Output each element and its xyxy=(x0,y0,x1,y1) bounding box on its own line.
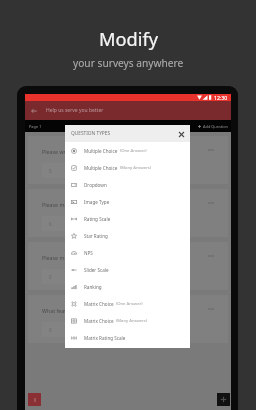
button[interactable]: More options xyxy=(208,254,214,258)
staticText: your surveys anywhere xyxy=(73,56,184,70)
staticText: Please write your name xyxy=(42,148,101,155)
staticText: Matrix Choice xyxy=(84,301,114,307)
button[interactable]: Multiple Choice xyxy=(65,159,190,176)
button[interactable]: Please mention the product used. xyxy=(28,242,228,290)
button[interactable]: Ranking xyxy=(65,278,190,295)
staticText: Dropdown xyxy=(84,182,107,188)
staticText: Please mention your age xyxy=(42,201,104,208)
button[interactable]: What features did you like? xyxy=(28,295,228,343)
button[interactable]: More options xyxy=(208,201,214,205)
button[interactable]: Rating Scale xyxy=(65,210,190,227)
staticText: Ranking xyxy=(84,284,102,290)
button[interactable]: Preview survey xyxy=(28,393,41,406)
button[interactable]: Add question xyxy=(217,393,230,406)
button[interactable]: Multiple Choice xyxy=(65,142,190,159)
button[interactable]: Back xyxy=(25,102,43,120)
button[interactable]: Star Rating xyxy=(65,227,190,244)
staticText: QUESTION TYPES xyxy=(71,130,111,137)
staticText: (Many Answers) xyxy=(116,318,148,324)
button[interactable]: Matrix Choice xyxy=(65,295,190,312)
staticText: What features did you like? xyxy=(42,307,110,314)
button[interactable]: Dropdown xyxy=(65,176,190,193)
button[interactable]: Please mention your age xyxy=(28,189,228,237)
staticText: Matrix Rating Scale xyxy=(84,335,126,341)
staticText: Help us serve you better xyxy=(46,107,104,114)
staticText: Slider Scale xyxy=(84,267,109,273)
button[interactable]: Image Type xyxy=(65,193,190,210)
staticText: 0 xyxy=(49,327,52,333)
button[interactable]: Page 1 xyxy=(27,122,44,131)
staticText: Multiple Choice xyxy=(84,165,118,171)
staticText: Star Rating xyxy=(84,233,108,239)
staticText: 12:30 xyxy=(214,94,228,101)
button[interactable]: More options xyxy=(208,307,214,311)
staticText: NPS xyxy=(84,250,93,256)
button[interactable]: More options xyxy=(208,148,214,152)
staticText: Add Question xyxy=(203,124,228,129)
button[interactable]: Slider Scale xyxy=(65,261,190,278)
staticText: 0 xyxy=(49,274,52,280)
staticText: 0 xyxy=(49,168,52,174)
staticText: 0 xyxy=(49,221,52,227)
staticText: Please mention the product used. xyxy=(42,254,126,261)
staticText: Matrix Choice xyxy=(84,318,114,324)
staticText: (Many Answers) xyxy=(120,165,152,171)
staticText: (One Answer) xyxy=(120,148,147,154)
button[interactable]: Close xyxy=(176,129,186,139)
button[interactable]: NPS xyxy=(65,244,190,261)
button[interactable]: Add Question xyxy=(196,122,230,131)
button[interactable]: Matrix Rating Scale xyxy=(65,329,190,346)
staticText: Rating Scale xyxy=(84,216,111,222)
staticText: (One Answer) xyxy=(116,301,143,307)
button[interactable]: Matrix Choice xyxy=(65,312,190,329)
staticText: Modify xyxy=(99,27,158,52)
staticText: Image Type xyxy=(84,199,110,205)
button[interactable]: Please write your name xyxy=(28,136,228,184)
staticText: Multiple Choice xyxy=(84,148,118,154)
staticText: Page 1 xyxy=(29,124,42,129)
